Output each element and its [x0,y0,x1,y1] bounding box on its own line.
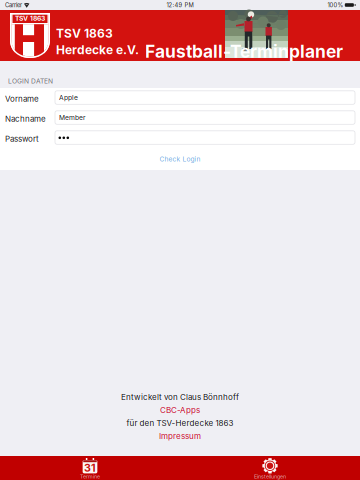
staticText: LOGIN DATEN [8,77,53,85]
staticText: Vorname [5,94,39,104]
button[interactable]: 31 [45,456,135,480]
staticText: 100% [327,1,343,9]
staticText: TSV 1863 [15,14,45,22]
staticText: Passwort [5,134,39,144]
staticText: Carrier [5,1,22,9]
staticText: Member [59,113,86,122]
button[interactable] [55,131,355,144]
button[interactable]: Member [55,111,355,124]
button[interactable]: Check Login [0,149,360,169]
staticText: für den TSV-Herdecke 1863 [126,418,233,428]
staticText: Entwickelt von Claus Bönnhoff [121,392,239,402]
button[interactable]: Einstellungen [225,456,315,480]
button[interactable]: Impressum [0,431,360,441]
staticText: Termine [80,473,100,480]
staticText: Einstellungen [254,473,286,480]
staticText: Nachname [5,114,46,124]
staticText: Impressum [159,431,201,441]
staticText: CBC-Apps [160,405,200,415]
staticText: Herdecke e.V. [56,42,139,57]
button[interactable]: Apple [55,91,355,104]
staticText: TSV 1863 [56,26,113,40]
staticText: Check Login [159,155,200,163]
staticText: Apple [59,93,78,102]
staticText: Faustball-Terminplaner [145,41,343,62]
button[interactable]: CBC-Apps [0,405,360,415]
staticText: 31 [84,461,96,474]
staticText: 12:49 PM [166,1,193,9]
